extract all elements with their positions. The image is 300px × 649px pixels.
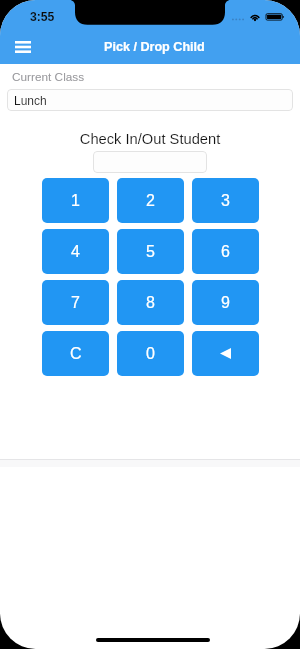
staticText: Check In/Out Student bbox=[0, 131, 300, 147]
staticText: 6 bbox=[221, 243, 230, 261]
button[interactable]: Student number bbox=[93, 151, 207, 173]
button[interactable]: Lunch bbox=[7, 89, 293, 111]
staticText: 5 bbox=[146, 243, 155, 261]
staticText: Current Class bbox=[12, 70, 85, 83]
button[interactable]: Open navigation menu bbox=[7, 31, 39, 63]
button[interactable]: Backspace bbox=[192, 331, 259, 376]
button[interactable]: 2 bbox=[117, 178, 184, 223]
button[interactable]: 0 bbox=[117, 331, 184, 376]
staticText: 3 bbox=[221, 192, 230, 210]
button[interactable]: 5 bbox=[117, 229, 184, 274]
staticText: Pick / Drop Child bbox=[104, 40, 205, 54]
staticText: Lunch bbox=[14, 94, 47, 107]
staticText: 1 bbox=[71, 192, 80, 210]
staticText: 2 bbox=[146, 192, 155, 210]
button[interactable]: 1 bbox=[42, 178, 109, 223]
staticText: 4 bbox=[71, 243, 80, 261]
button[interactable]: 3 bbox=[192, 178, 259, 223]
button[interactable]: 4 bbox=[42, 229, 109, 274]
button[interactable]: C bbox=[42, 331, 109, 376]
button[interactable]: 8 bbox=[117, 280, 184, 325]
staticText: 7 bbox=[71, 294, 80, 312]
staticText: 3:55 bbox=[30, 10, 55, 24]
staticText: 0 bbox=[146, 345, 155, 363]
staticText: C bbox=[70, 345, 82, 363]
staticText: 8 bbox=[146, 294, 155, 312]
button[interactable]: 9 bbox=[192, 280, 259, 325]
staticText: 9 bbox=[221, 294, 230, 312]
button[interactable]: 7 bbox=[42, 280, 109, 325]
button[interactable]: 6 bbox=[192, 229, 259, 274]
